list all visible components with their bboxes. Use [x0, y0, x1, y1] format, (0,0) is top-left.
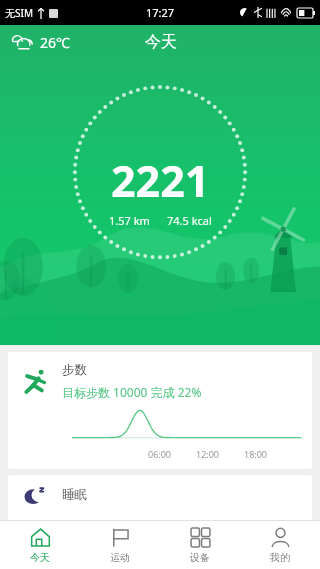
other: 运动	[110, 527, 131, 548]
other: 今天	[30, 527, 51, 548]
staticText: 运动	[110, 551, 130, 564]
staticText: 目标步数 10000 完成 22%	[62, 384, 202, 400]
staticText: 2221	[111, 151, 210, 210]
button[interactable]: 运动	[80, 521, 160, 569]
button[interactable]: Weather	[9, 30, 73, 55]
staticText: 06:00	[148, 448, 172, 460]
staticText: 26℃	[40, 33, 70, 52]
staticText: 17:27	[146, 5, 175, 20]
staticText: 74.5 kcal	[167, 213, 212, 228]
staticText: 12:00	[196, 448, 220, 460]
staticText: 18:00	[244, 448, 268, 460]
button[interactable]: 我的	[240, 521, 320, 569]
button[interactable]: 设备	[160, 521, 240, 569]
staticText: 睡眠	[62, 487, 87, 503]
button[interactable]: 步数	[8, 352, 312, 469]
staticText: 无SIM	[5, 6, 33, 20]
other: 设备	[190, 527, 211, 548]
staticText: 步数	[62, 362, 87, 378]
button[interactable]: 今天	[0, 521, 80, 569]
staticText: 设备	[190, 551, 210, 564]
staticText: 我的	[270, 551, 290, 564]
other: 我的	[270, 527, 291, 548]
staticText: 今天	[145, 32, 177, 52]
staticText: 1.57 km	[109, 213, 150, 228]
other: Weather	[12, 35, 35, 51]
button[interactable]: 睡眠	[8, 475, 312, 520]
staticText: 今天	[30, 551, 50, 564]
